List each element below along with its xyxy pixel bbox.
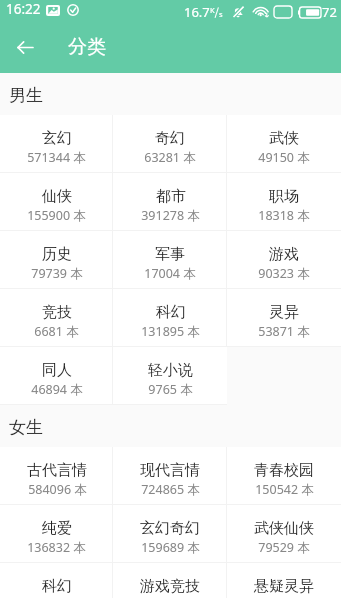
staticText: 150542 本 xyxy=(255,481,314,498)
staticText: 同人 xyxy=(42,361,72,380)
staticText: 72 xyxy=(322,3,337,21)
staticText: 159689 本 xyxy=(141,539,200,556)
staticText: 63281 本 xyxy=(144,149,196,166)
button[interactable]: 仙侠 xyxy=(0,173,113,230)
staticText: 49150 本 xyxy=(258,149,310,166)
staticText: 17004 本 xyxy=(144,265,196,282)
staticText: 90323 本 xyxy=(258,265,310,282)
staticText: 武侠 xyxy=(269,129,299,148)
staticText: 奇幻 xyxy=(155,129,185,148)
button[interactable]: 都市 xyxy=(113,173,227,230)
staticText: 科幻 xyxy=(156,303,186,322)
staticText: 灵异 xyxy=(269,303,299,322)
staticText: 职场 xyxy=(269,187,299,206)
staticText: 玄幻 xyxy=(42,129,72,148)
button[interactable]: 武侠 xyxy=(227,115,341,172)
staticText: 53871 本 xyxy=(258,323,310,340)
button[interactable]: 科幻 xyxy=(113,289,227,346)
staticText: 竞技 xyxy=(42,303,72,322)
staticText: 分类 xyxy=(68,35,106,59)
button[interactable]: 轻小说 xyxy=(113,347,227,404)
button[interactable]: 古代言情 xyxy=(0,447,113,504)
staticText: 79529 本 xyxy=(258,539,310,556)
staticText: 古代言情 xyxy=(27,461,87,480)
button[interactable]: 职场 xyxy=(227,173,341,230)
button[interactable]: 青春校园 xyxy=(227,447,341,504)
button[interactable]: Back xyxy=(7,29,43,65)
staticText: 历史 xyxy=(42,245,72,264)
staticText: 悬疑灵异 xyxy=(254,577,314,596)
staticText: 玄幻奇幻 xyxy=(140,519,200,538)
staticText: 游戏竞技 xyxy=(140,577,200,596)
staticText: 16.7 xyxy=(184,3,210,21)
button[interactable]: 武侠仙侠 xyxy=(227,505,341,562)
button[interactable]: 军事 xyxy=(113,231,227,288)
button[interactable]: 奇幻 xyxy=(113,115,227,172)
staticText: 青春校园 xyxy=(254,461,314,480)
staticText: 79739 本 xyxy=(31,265,83,282)
staticText: 16:22 xyxy=(6,0,41,18)
staticText: 科幻 xyxy=(42,577,72,596)
staticText: 武侠仙侠 xyxy=(254,519,314,538)
staticText: 571344 本 xyxy=(27,149,86,166)
staticText: 女生 xyxy=(9,417,43,438)
button[interactable]: 悬疑灵异 xyxy=(227,563,341,610)
staticText: K xyxy=(210,5,215,15)
staticText: 584096 本 xyxy=(28,481,87,498)
staticText: 6681 本 xyxy=(34,323,79,340)
staticText: 131895 本 xyxy=(141,323,200,340)
staticText: 18318 本 xyxy=(258,207,310,224)
staticText: 391278 本 xyxy=(141,207,200,224)
staticText: 轻小说 xyxy=(148,361,193,380)
staticText: 155900 本 xyxy=(27,207,86,224)
button[interactable]: 同人 xyxy=(0,347,113,404)
staticText: 纯爱 xyxy=(42,519,72,538)
staticText: 男生 xyxy=(9,85,43,106)
staticText: 现代言情 xyxy=(140,461,200,480)
button[interactable]: 玄幻奇幻 xyxy=(113,505,227,562)
button[interactable]: 灵异 xyxy=(227,289,341,346)
button[interactable]: 玄幻 xyxy=(0,115,113,172)
staticText: 都市 xyxy=(156,187,186,206)
button[interactable]: 历史 xyxy=(0,231,113,288)
button[interactable]: 现代言情 xyxy=(113,447,227,504)
button[interactable]: 纯爱 xyxy=(0,505,113,562)
staticText: 仙侠 xyxy=(42,187,72,206)
button[interactable]: 游戏 xyxy=(227,231,341,288)
staticText: 136832 本 xyxy=(27,539,86,556)
staticText: 46894 本 xyxy=(31,381,83,398)
staticText: 游戏 xyxy=(269,245,299,264)
staticText: s xyxy=(219,9,223,19)
button[interactable]: 游戏竞技 xyxy=(113,563,227,610)
button[interactable]: 科幻 xyxy=(0,563,113,610)
staticText: 9765 本 xyxy=(148,381,193,398)
button[interactable]: 竞技 xyxy=(0,289,113,346)
staticText: 军事 xyxy=(155,245,185,264)
staticText: 724865 本 xyxy=(141,481,200,498)
